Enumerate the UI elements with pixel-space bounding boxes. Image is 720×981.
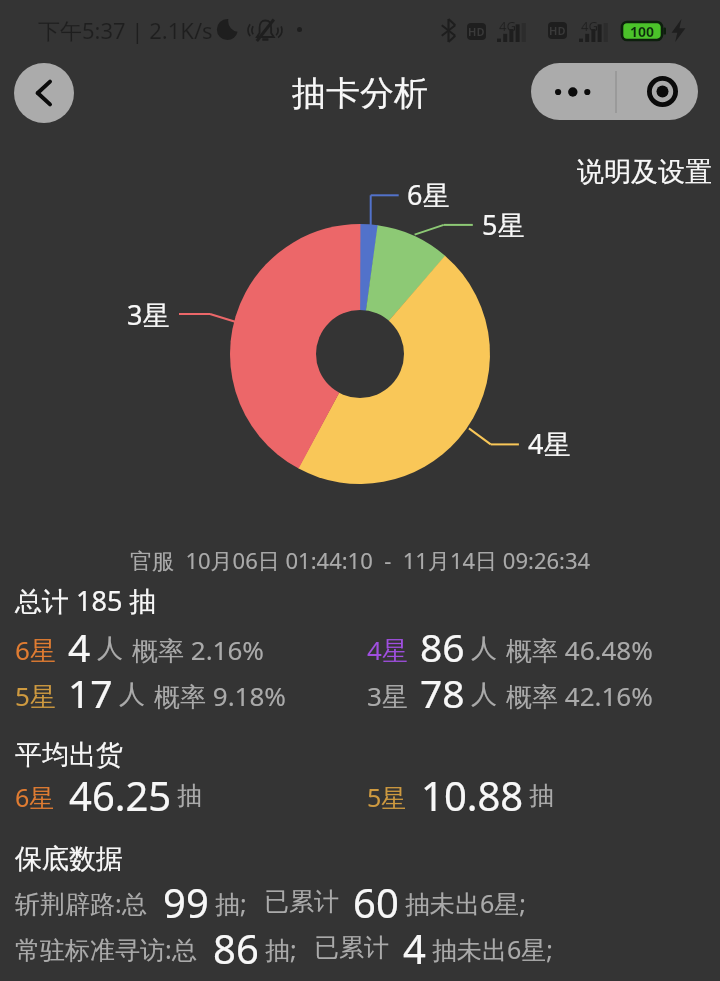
staticText: 人 [119,678,145,711]
staticText: 3星 [367,678,408,714]
staticText: 抽; [215,886,247,920]
button[interactable]: Pull rarity distribution chart [230,224,490,484]
staticText: 99 [163,875,209,929]
staticText: 人 [97,632,123,665]
staticText: 60 [353,875,399,929]
staticText: 6星 [15,780,55,814]
staticText: 86 [420,620,465,673]
staticText: 人 [471,678,497,711]
staticText: 5星 [482,206,525,243]
staticText: 抽 [529,780,554,811]
staticText: 斩荆辟路:总 [15,886,147,920]
staticText: 78 [420,666,465,719]
button[interactable]: More options [531,63,615,120]
staticText: 已累计 [264,886,339,917]
staticText: 平均出货 [15,738,123,772]
staticText: 10.88 [421,768,524,822]
staticText: 抽 [177,780,202,811]
staticText: 已累计 [314,932,389,963]
staticText: 抽; [265,932,297,966]
staticText: 6星 [15,632,56,668]
staticText: 4星 [367,632,408,668]
staticText: 3星 [127,296,170,333]
staticText: 86 [213,921,259,975]
staticText: 5星 [367,780,407,814]
staticText: 概率 46.48% [506,632,653,668]
staticText: 4 [403,921,426,975]
staticText: 46.25 [69,768,172,822]
staticText: HD [468,24,485,39]
staticText: 概率 9.18% [154,678,286,714]
staticText: 人 [471,632,497,665]
staticText: 4星 [528,425,571,462]
staticText: 总计 185 抽 [15,582,157,619]
staticText: 17 [68,666,113,719]
staticText: 下午5:37 | 2.1K/s [38,15,213,45]
staticText: 100 [630,22,655,40]
staticText: 抽未出6星; [432,932,554,966]
staticText: 抽卡分析 [292,72,428,115]
staticText: 抽未出6星; [405,886,527,920]
staticText: 4G [499,17,516,35]
button[interactable]: Back [14,63,74,123]
staticText: 概率 2.16% [132,632,264,668]
staticText: 说明及设置 [577,155,712,189]
staticText: 保底数据 [15,842,123,876]
staticText: 6星 [407,176,450,213]
staticText: 5星 [15,678,56,714]
staticText: 4 [68,620,91,673]
button[interactable]: Close [617,63,698,120]
staticText: 常驻标准寻访:总 [15,932,197,966]
staticText: 官服 10月06日 01:44:10 - 11月14日 09:26:34 [130,545,591,575]
staticText: HD [549,23,566,38]
button[interactable]: 说明及设置 [567,145,720,199]
staticText: 4G [581,17,598,35]
staticText: 概率 42.16% [506,678,653,714]
